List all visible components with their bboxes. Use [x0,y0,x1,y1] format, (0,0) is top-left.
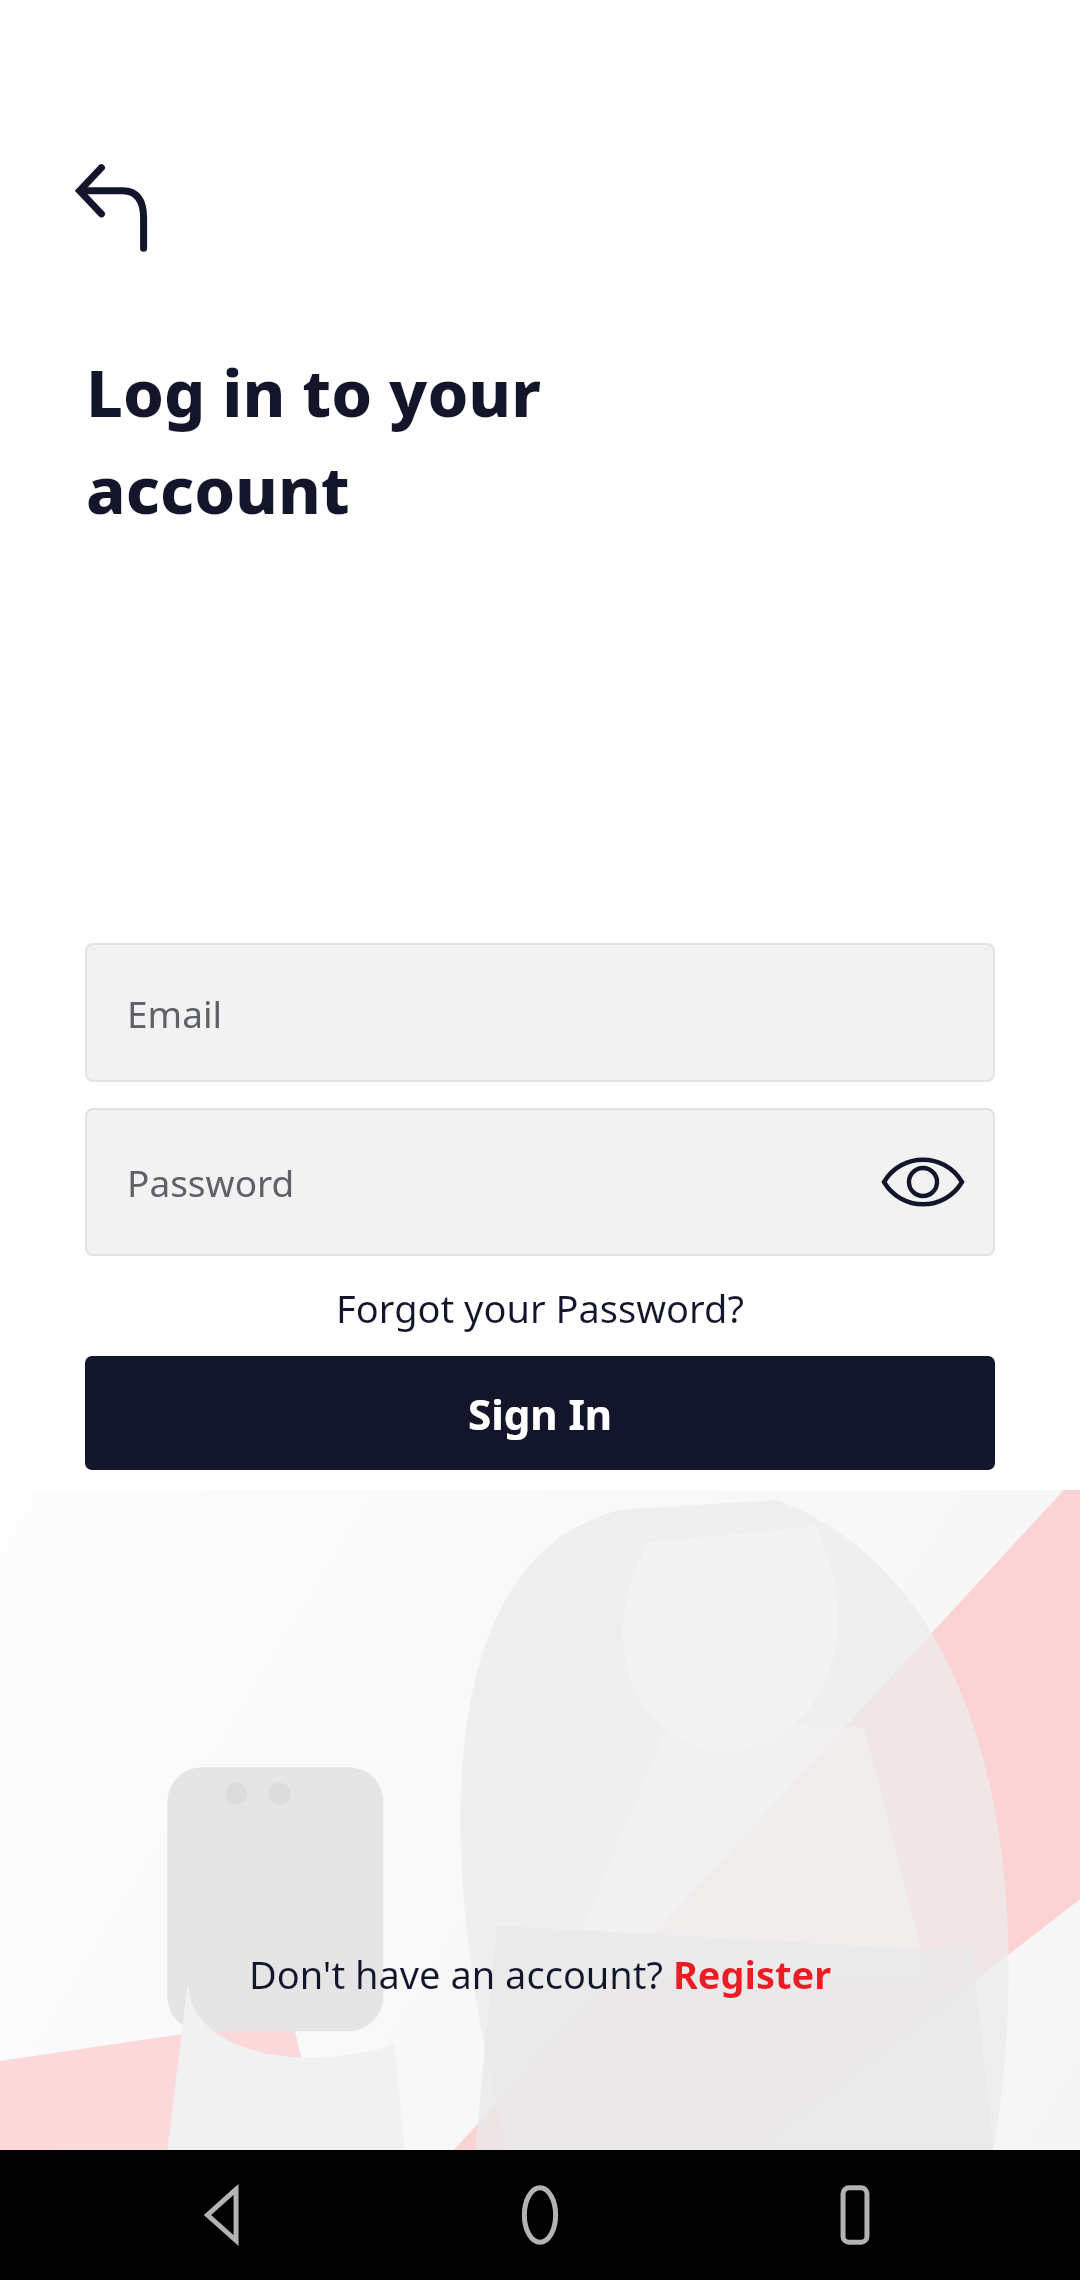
button[interactable]: Don't have an account? Register [245,1944,836,2004]
staticText: Forgot your Password? [336,1282,744,1334]
staticText: Log in to your account [86,348,646,533]
button[interactable]: Recents [800,2160,910,2270]
button[interactable]: Password [85,1108,995,1256]
button[interactable]: Forgot your Password? [85,1276,995,1340]
button[interactable]: Back [170,2160,280,2270]
staticText: Sign In [468,1385,613,1442]
staticText: Password [127,1157,295,1207]
button[interactable]: Home [485,2160,595,2270]
button[interactable]: Show password [871,1130,975,1234]
staticText: Email [127,988,223,1038]
button[interactable]: Sign In [85,1356,995,1470]
button[interactable]: Email [85,943,995,1082]
staticText: Don't have an account? Register [249,1948,832,2000]
button[interactable]: Back [56,150,172,266]
